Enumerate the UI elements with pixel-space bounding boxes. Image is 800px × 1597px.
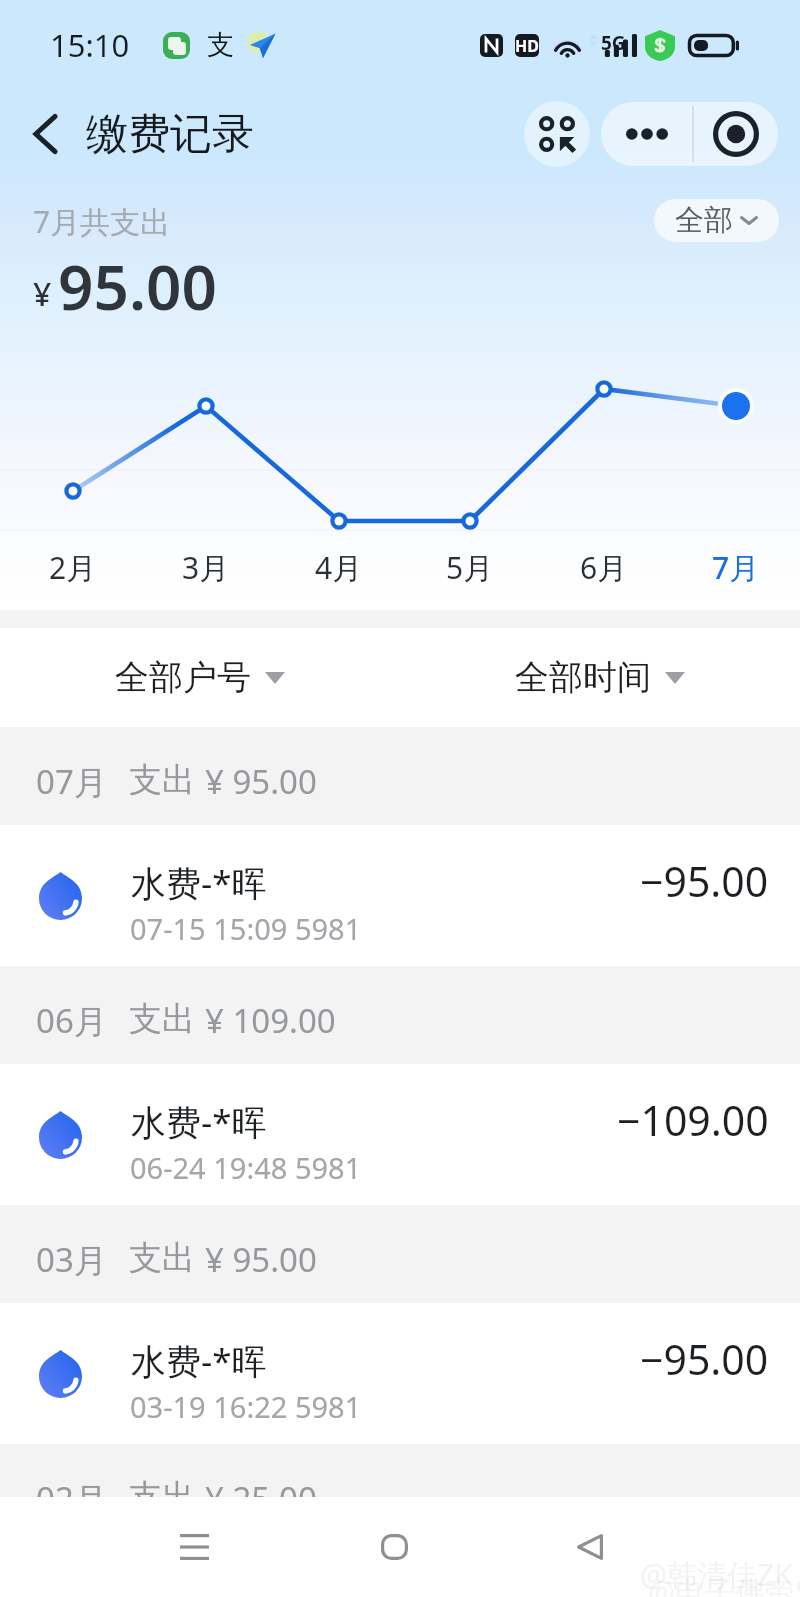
staticText: ¥ 25.00: [205, 1476, 317, 1521]
staticText: 支: [207, 28, 234, 62]
button[interactable]: 水费-*晖: [0, 1303, 800, 1444]
staticText: 5G: [601, 30, 626, 53]
button[interactable]: 全部户号: [115, 656, 285, 699]
button[interactable]: Home: [348, 1501, 440, 1593]
staticText: @韩清佳ZK: [640, 1554, 793, 1595]
staticText: 15:10: [50, 24, 130, 66]
staticText: 07-15 15:09 5981: [130, 909, 362, 948]
staticText: 7月: [712, 547, 760, 588]
staticText: @电子佛帝Sam: [648, 1571, 800, 1597]
button[interactable]: Scan: [524, 101, 590, 167]
button[interactable]: Back: [544, 1501, 636, 1593]
staticText: 3月: [182, 547, 230, 588]
staticText: 缴费记录: [86, 108, 254, 161]
staticText: −95.00: [640, 853, 769, 909]
staticText: 06-24 19:48 5981: [130, 1148, 362, 1187]
staticText: ¥ 95.00: [205, 1237, 317, 1282]
staticText: 水费-*晖: [131, 859, 267, 907]
staticText: 4月: [315, 547, 363, 588]
staticText: ¥ 95.00: [205, 759, 317, 804]
button[interactable]: Back: [18, 107, 72, 161]
staticText: ¥: [33, 272, 52, 316]
staticText: 07月: [36, 759, 107, 804]
staticText: 全部户号: [115, 656, 251, 699]
staticText: 全部: [675, 202, 733, 239]
staticText: 06月: [36, 998, 107, 1043]
staticText: 水费-*晖: [131, 1337, 267, 1385]
staticText: 水费-*晖: [131, 1098, 267, 1146]
staticText: 支出: [129, 759, 195, 801]
button[interactable]: More options: [601, 102, 692, 166]
button[interactable]: 全部: [654, 199, 779, 242]
staticText: −109.00: [617, 1092, 769, 1148]
button[interactable]: Record: [694, 102, 778, 166]
button[interactable]: 全部时间: [515, 656, 685, 699]
staticText: 支出: [129, 1237, 195, 1279]
staticText: ¥ 109.00: [205, 998, 336, 1043]
button[interactable]: 水费-*晖: [0, 825, 800, 966]
staticText: 7月共支出: [33, 201, 171, 242]
staticText: 2月: [49, 547, 97, 588]
staticText: 95.00: [58, 244, 217, 328]
staticText: 全部时间: [515, 656, 651, 699]
staticText: 03月: [36, 1237, 107, 1282]
staticText: 6月: [580, 547, 628, 588]
button[interactable]: 水费-*晖: [0, 1064, 800, 1205]
staticText: −95.00: [640, 1331, 769, 1387]
staticText: 支出: [129, 998, 195, 1040]
staticText: 02月: [36, 1476, 107, 1521]
staticText: 支出: [129, 1476, 195, 1518]
staticText: HD: [515, 35, 539, 57]
staticText: 03-19 16:22 5981: [130, 1387, 362, 1426]
staticText: 5月: [446, 547, 494, 588]
button[interactable]: Recent apps: [148, 1501, 240, 1593]
